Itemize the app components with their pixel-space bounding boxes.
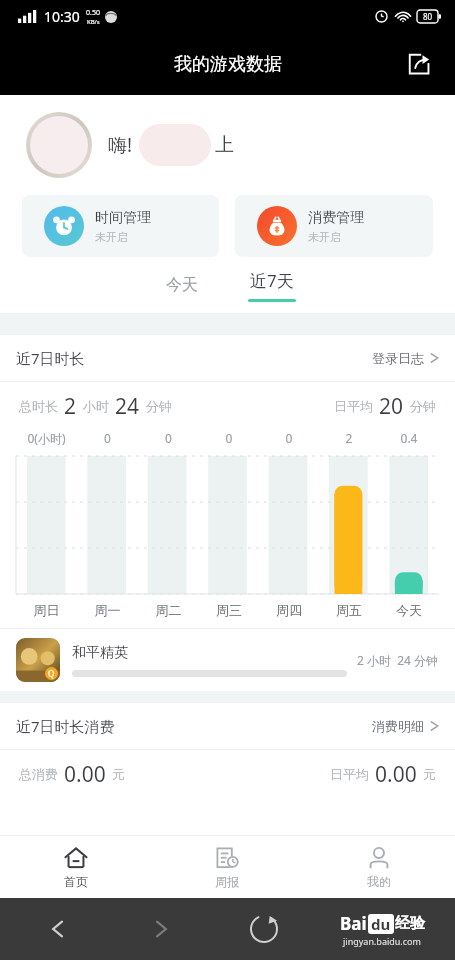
button[interactable]: 今天 <box>146 267 218 303</box>
staticText: 周三 <box>199 602 259 618</box>
staticText: 周日 <box>16 602 77 618</box>
button[interactable]: 近7天 <box>234 265 310 306</box>
staticText: 20 <box>379 392 404 421</box>
staticText: 0.00 <box>64 760 106 789</box>
staticText: 0 <box>259 430 319 446</box>
staticText: 上 <box>215 133 234 157</box>
staticText: 日平均 <box>334 398 373 414</box>
staticText: 未开启 <box>308 230 341 244</box>
staticText: 和平精英 <box>72 644 128 662</box>
staticText: 小时 <box>83 398 109 414</box>
staticText: KB/s <box>87 18 100 26</box>
staticText: 元 <box>423 766 436 782</box>
button[interactable]: Back <box>6 898 109 960</box>
button[interactable]: 时间管理 <box>22 195 219 257</box>
staticText: 消费管理 <box>308 209 364 227</box>
staticText: 0 <box>138 430 199 446</box>
staticText: 日平均 <box>330 766 369 782</box>
staticText: 时间管理 <box>95 209 151 227</box>
staticText: 未开启 <box>95 230 128 244</box>
staticText: Q <box>48 668 55 679</box>
button[interactable]: Q <box>0 629 455 691</box>
button[interactable]: Reload <box>212 898 315 960</box>
button[interactable]: 周报 <box>151 836 303 898</box>
button[interactable]: 消费明细 <box>360 712 439 740</box>
button[interactable]: 首页 <box>0 836 151 898</box>
staticText: 10:30 <box>44 7 80 26</box>
staticText: 2 <box>64 392 77 421</box>
staticText: 今天 <box>379 602 439 618</box>
button[interactable]: 嗨! <box>0 95 455 195</box>
staticText: jingyan.baidu.com <box>343 935 421 947</box>
staticText: 0 <box>199 430 259 446</box>
staticText: 总消费 <box>19 766 58 782</box>
staticText: 消费明细 <box>372 718 424 734</box>
staticText: 周二 <box>138 602 199 618</box>
staticText: 2 小时 24 分钟 <box>357 652 439 668</box>
staticText: 2 <box>319 430 379 446</box>
staticText: 嗨! <box>108 132 133 158</box>
staticText: 首页 <box>64 874 88 889</box>
staticText: Bai <box>340 912 367 935</box>
button[interactable]: Share <box>399 44 439 84</box>
staticText: 0.4 <box>379 430 439 446</box>
button[interactable]: 登录日志 <box>360 344 439 372</box>
staticText: du <box>371 914 391 934</box>
staticText: 总时长 <box>19 398 58 414</box>
staticText: 经验 <box>395 914 425 933</box>
staticText: 登录日志 <box>372 350 424 366</box>
staticText: 周一 <box>77 602 138 618</box>
staticText: 近7天 <box>250 269 294 292</box>
staticText: 80 <box>423 11 433 22</box>
staticText: 0 <box>77 430 138 446</box>
staticText: 周五 <box>319 602 379 618</box>
staticText: 分钟 <box>410 398 436 414</box>
staticText: 0.50 <box>86 8 100 18</box>
staticText: 近7日时长消费 <box>16 716 115 736</box>
staticText: 分钟 <box>146 398 172 414</box>
button[interactable]: Forward <box>109 898 212 960</box>
button[interactable]: 我的 <box>303 836 455 898</box>
staticText: 0.00 <box>375 760 417 789</box>
staticText: 周报 <box>215 874 239 889</box>
staticText: 周四 <box>259 602 319 618</box>
staticText: 我的 <box>367 874 391 889</box>
staticText: 今天 <box>166 275 198 295</box>
staticText: 我的游戏数据 <box>174 53 282 76</box>
staticText: 元 <box>112 766 125 782</box>
staticText: 24 <box>115 392 140 421</box>
staticText: 近7日时长 <box>16 348 85 368</box>
button[interactable]: 消费管理 <box>235 195 433 257</box>
staticText: 0(小时) <box>16 430 77 446</box>
